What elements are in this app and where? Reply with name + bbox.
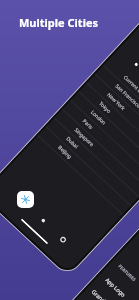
button[interactable]: Paris [62,101,139,189]
button[interactable]: Cities [14,193,31,210]
button[interactable]: Weather app icon [17,191,34,208]
button[interactable]: Temperature [35,212,52,229]
staticText: Multiple Cities [19,15,99,30]
button[interactable]: Settings [55,230,72,247]
button[interactable]: Current Location [103,57,139,145]
staticText: Dubai [65,135,80,150]
staticText: Grand Feature [91,288,123,300]
button[interactable]: Tokyo [78,83,139,171]
staticText: Tokyo [97,100,112,115]
staticText: San Francisco [114,83,139,110]
staticText: Singapore [73,127,95,148]
staticText: Paris [81,118,94,131]
staticText: Beijing [56,144,74,161]
button[interactable]: Add city [126,54,139,74]
staticText: FEATURES [117,263,137,282]
button[interactable]: San Francisco [95,66,139,153]
button[interactable]: Beijing [37,127,130,215]
button[interactable]: Singapore [54,109,139,197]
button[interactable]: Dubai [46,118,139,206]
staticText: App Logo [104,276,127,298]
button[interactable]: New York [87,74,139,162]
staticText: New York [105,91,127,112]
staticText: London [89,109,107,126]
button[interactable]: London [70,92,139,180]
staticText: Current Location [122,74,139,106]
